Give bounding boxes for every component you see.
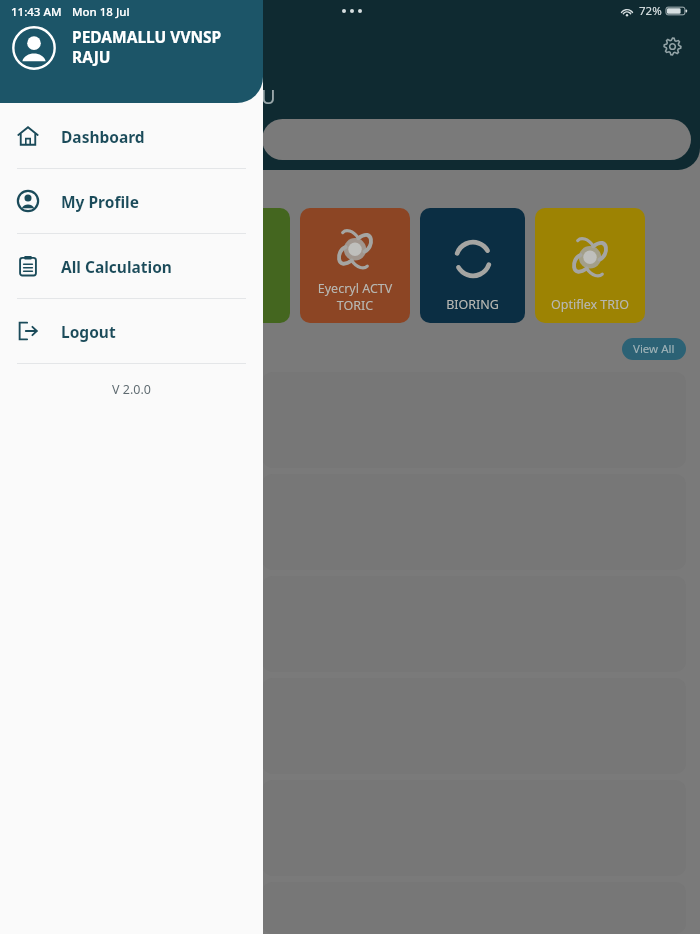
staticText: BIORING xyxy=(420,296,525,313)
staticText: View All xyxy=(633,341,675,357)
staticText: V 2.0.0 xyxy=(0,381,263,398)
button[interactable]: XIC xyxy=(180,208,290,323)
staticText: 72% xyxy=(639,3,662,19)
button[interactable]: Settings xyxy=(654,28,690,64)
button[interactable]: Optiflex TRIO xyxy=(535,208,645,323)
button[interactable]: My Profile xyxy=(0,169,263,234)
button[interactable] xyxy=(262,576,686,672)
staticText: My Profile xyxy=(61,191,139,212)
staticText: All Calculation xyxy=(61,256,172,277)
button[interactable]: All Calculation xyxy=(0,234,263,299)
button[interactable]: Eyecryl ACTV TORIC xyxy=(300,208,410,323)
button[interactable]: Logout xyxy=(0,299,263,364)
button[interactable] xyxy=(262,372,686,468)
button[interactable] xyxy=(262,678,686,774)
staticText: 11:43 AM xyxy=(11,4,62,20)
button[interactable] xyxy=(262,119,691,160)
staticText: Logout xyxy=(61,321,116,342)
button[interactable] xyxy=(262,474,686,570)
button[interactable] xyxy=(262,780,686,876)
staticText: PEDAMALLU VVNSP RAJU xyxy=(72,26,253,68)
staticText: Dashboard xyxy=(61,126,145,147)
staticText: Optiflex TRIO xyxy=(535,296,645,313)
staticText: XIC xyxy=(180,296,290,313)
button[interactable]: View All xyxy=(622,338,686,360)
button[interactable]: Dashboard xyxy=(0,104,263,169)
button[interactable] xyxy=(262,882,686,934)
staticText: Mon 18 Jul xyxy=(72,4,130,20)
staticText: U xyxy=(261,83,276,110)
staticText: Eyecryl ACTV TORIC xyxy=(300,280,410,313)
button[interactable]: BIORING xyxy=(420,208,525,323)
